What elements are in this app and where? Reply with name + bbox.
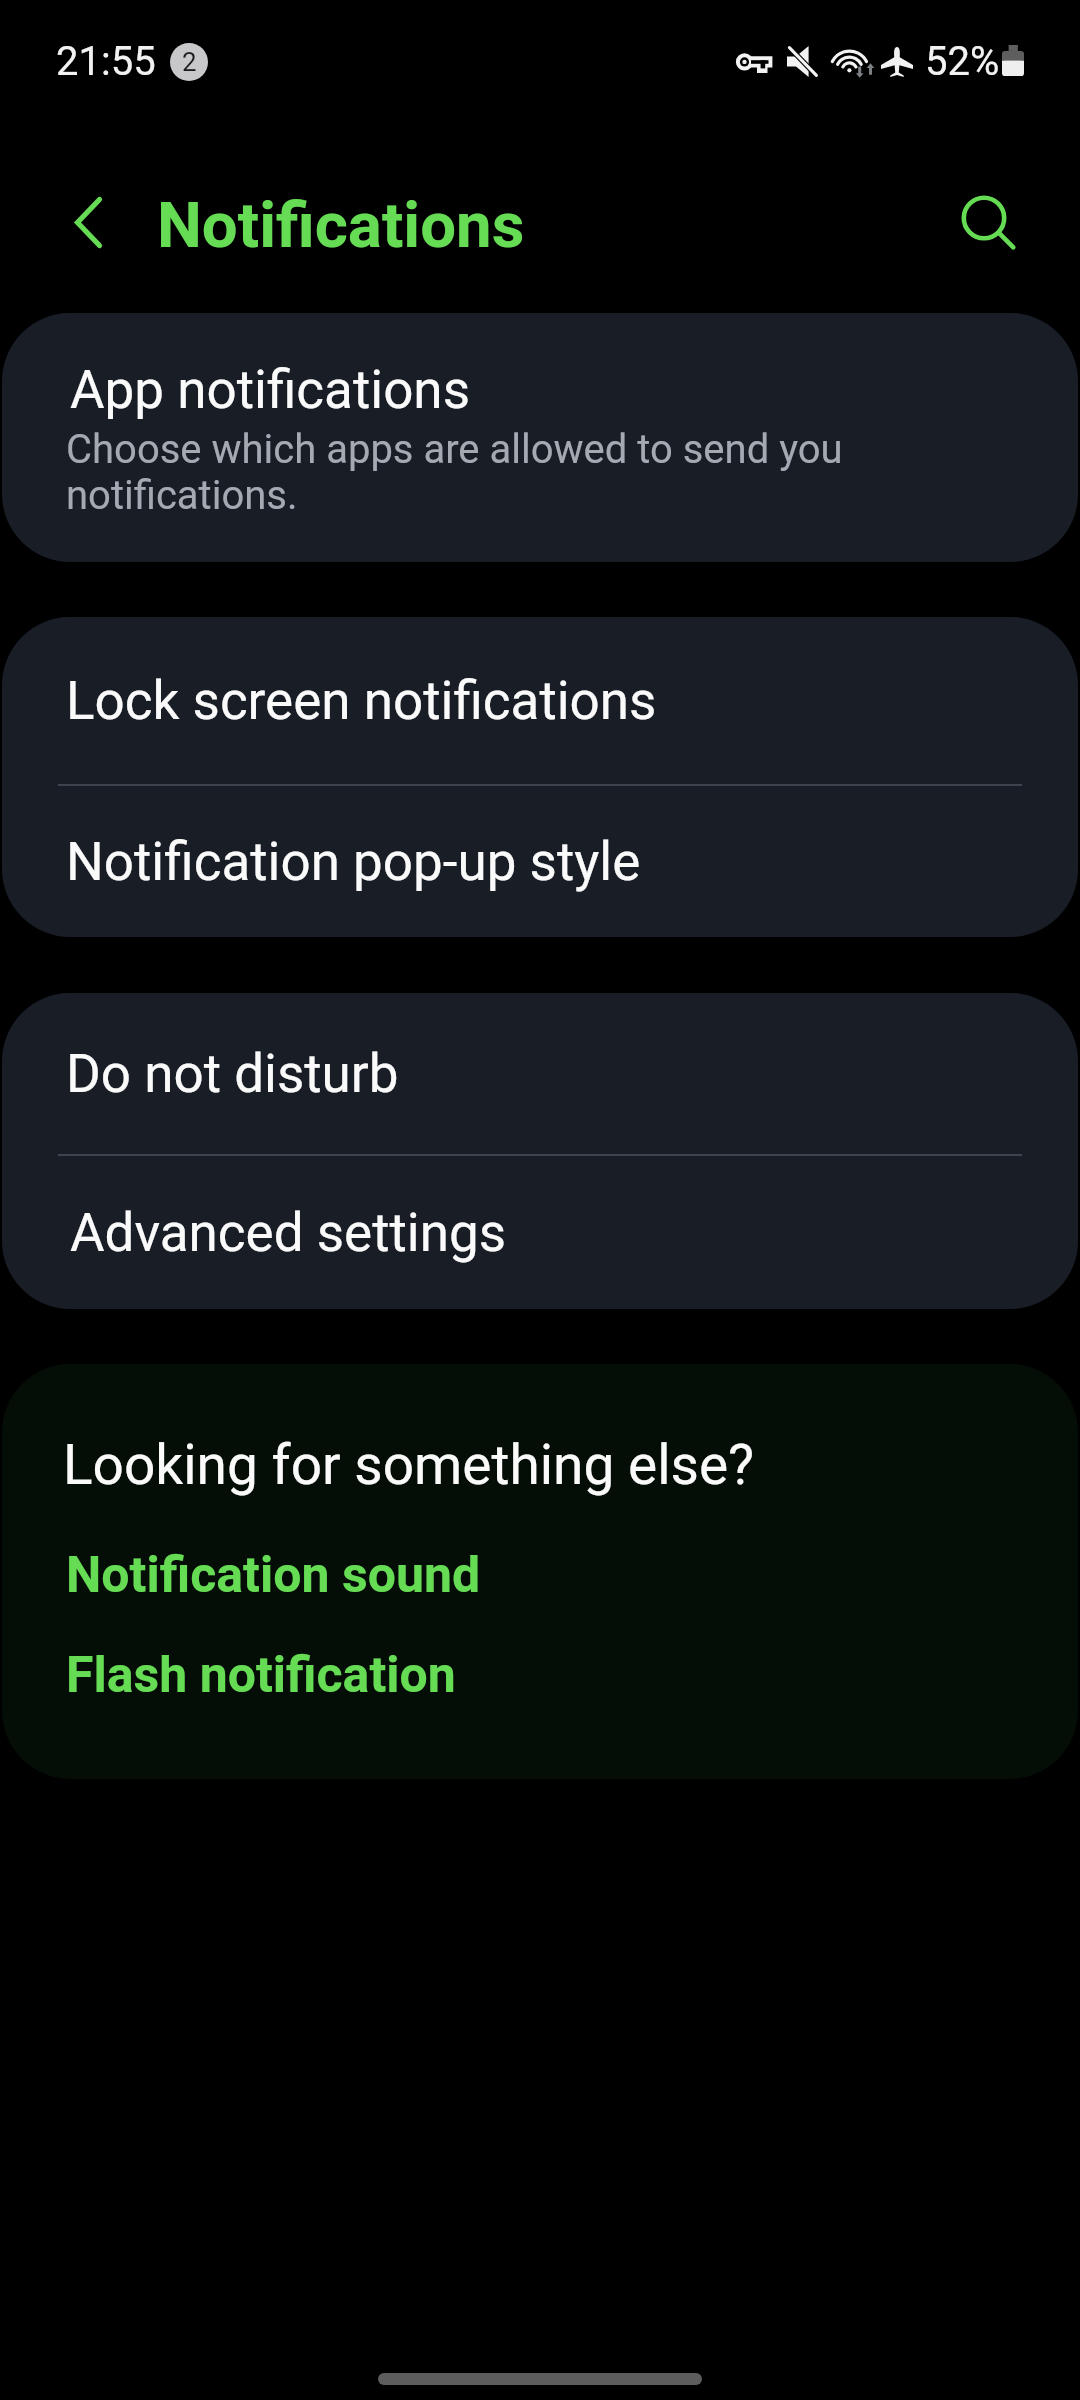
- button[interactable]: Advanced settings: [2, 1156, 1078, 1309]
- staticText: Lock screen notifications: [66, 670, 657, 732]
- staticText: Notifications: [157, 188, 525, 262]
- button[interactable]: App notifications: [2, 313, 1078, 562]
- button[interactable]: Back: [40, 174, 136, 270]
- staticText: Notification pop-up style: [66, 831, 641, 893]
- button[interactable]: Notification sound: [2, 1536, 1078, 1614]
- staticText: 2: [182, 47, 197, 77]
- button[interactable]: Do not disturb: [2, 993, 1078, 1154]
- staticText: Flash notification: [66, 1646, 456, 1705]
- staticText: 52%: [925, 38, 1000, 85]
- button[interactable]: Search: [938, 174, 1034, 270]
- staticText: Notification sound: [66, 1546, 481, 1605]
- staticText: App notifications: [70, 359, 470, 421]
- staticText: Do not disturb: [66, 1043, 399, 1105]
- staticText: 21:55: [56, 38, 156, 85]
- button[interactable]: Flash notification: [2, 1636, 1078, 1714]
- staticText: Looking for something else?: [63, 1433, 755, 1497]
- button[interactable]: Lock screen notifications: [2, 617, 1078, 784]
- staticText: Advanced settings: [70, 1202, 507, 1264]
- staticText: Choose which apps are allowed to send yo…: [66, 426, 906, 519]
- button[interactable]: Notification pop-up style: [2, 786, 1078, 937]
